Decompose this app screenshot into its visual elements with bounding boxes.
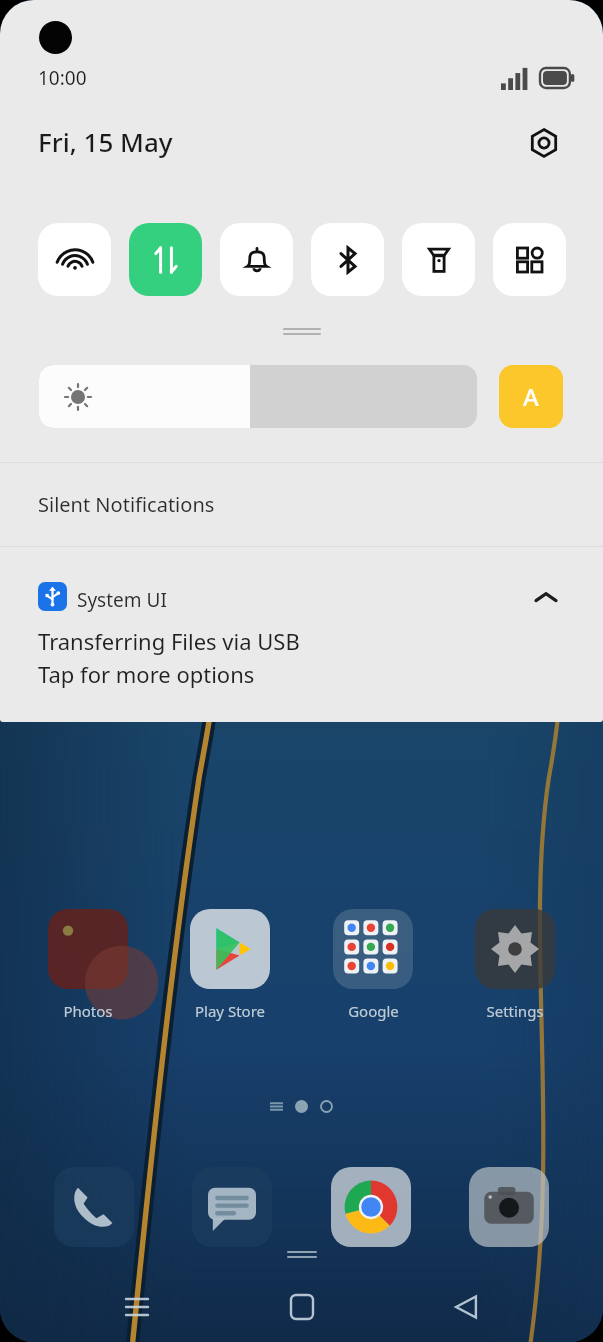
button[interactable]: Collapse [522,573,570,621]
button[interactable]: All tiles [493,223,566,296]
button[interactable]: Home [274,1288,330,1326]
staticText: Tap for more options [38,659,255,689]
staticText: 10:00 [38,65,87,91]
button[interactable]: System UI [0,547,603,722]
button[interactable]: Wi-Fi [38,223,111,296]
button[interactable]: Flashlight [402,223,475,296]
button[interactable]: Mobile data [129,223,202,296]
staticText: Google [348,1001,399,1021]
button[interactable]: Recents [109,1288,165,1326]
button[interactable]: Bluetooth [311,223,384,296]
button[interactable]: Back [438,1288,494,1326]
staticText: Fri, 15 May [38,124,173,159]
button[interactable]: Do not disturb [220,223,293,296]
staticText: Settings [486,1001,544,1021]
button[interactable]: Google [318,908,428,1021]
button[interactable]: Brightness [39,365,477,428]
button[interactable]: Camera [465,1163,553,1251]
staticText: Photos [63,1001,113,1021]
button[interactable]: Phone [50,1163,138,1251]
staticText: Silent Notifications [38,491,215,518]
staticText: Play Store [195,1001,265,1021]
button[interactable]: Silent Notifications [0,463,603,546]
button[interactable]: Settings [460,908,570,1021]
button[interactable]: Messages [188,1163,276,1251]
button[interactable]: Chrome [327,1163,415,1251]
button[interactable]: Auto brightness [499,365,563,428]
button[interactable]: Play Store [175,908,285,1021]
button[interactable]: Settings [518,117,570,169]
staticText: A [523,380,539,413]
button[interactable]: Photos [33,908,143,1021]
staticText: System UI [77,587,167,613]
staticText: Transferring Files via USB [38,626,300,656]
